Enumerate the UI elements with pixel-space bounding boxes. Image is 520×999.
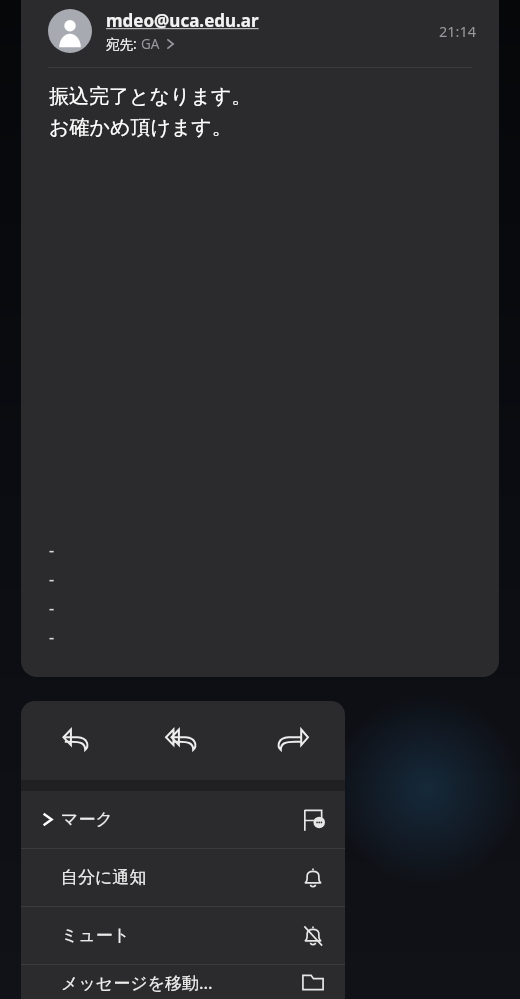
staticText: メッセージを移動... (61, 971, 301, 994)
staticText: - (49, 568, 55, 590)
button[interactable]: メッセージを移動... (21, 965, 345, 999)
button[interactable]: Reply (21, 701, 129, 780)
button[interactable]: mdeo@uca.edu.ar (21, 0, 499, 62)
staticText: GA (141, 35, 160, 53)
staticText: お確かめ頂けます。 (49, 115, 232, 140)
button[interactable]: Forward (237, 701, 345, 780)
staticText: 振込完了となります。 (49, 84, 252, 109)
button[interactable]: 自分に通知 (21, 849, 345, 906)
staticText: 21:14 (439, 21, 477, 41)
staticText: - (49, 539, 55, 561)
staticText: mdeo@uca.edu.ar (106, 9, 259, 32)
button[interactable]: ミュート (21, 907, 345, 964)
button[interactable]: マーク (21, 791, 345, 848)
staticText: マーク (61, 809, 301, 830)
staticText: - (49, 626, 55, 648)
staticText: ミュート (61, 925, 301, 946)
staticText: 宛先: (106, 35, 141, 53)
button[interactable]: Reply all (129, 701, 237, 780)
staticText: - (49, 597, 55, 619)
staticText: 自分に通知 (61, 867, 301, 888)
